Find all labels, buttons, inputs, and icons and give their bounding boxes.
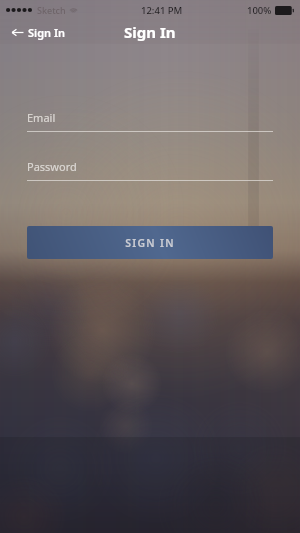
staticText: Sign In <box>28 25 66 40</box>
button[interactable]: SIGN IN <box>27 226 273 259</box>
button[interactable]: Email <box>27 110 273 132</box>
staticText: 12:41 PM <box>141 4 183 17</box>
staticText: Email <box>27 110 56 125</box>
staticText: SIGN IN <box>125 236 175 250</box>
staticText: 100% <box>247 4 272 17</box>
staticText: Password <box>27 159 77 174</box>
staticText: Sketch <box>37 4 66 16</box>
button[interactable]: Password <box>27 159 273 181</box>
button[interactable]: Sign In <box>8 23 69 42</box>
staticText: Sign In <box>124 22 176 42</box>
